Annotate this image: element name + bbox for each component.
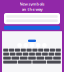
- button[interactable]: [0, 26, 64, 30]
- staticText: on the way: [21, 6, 42, 12]
- staticText: New symbols: [19, 1, 44, 6]
